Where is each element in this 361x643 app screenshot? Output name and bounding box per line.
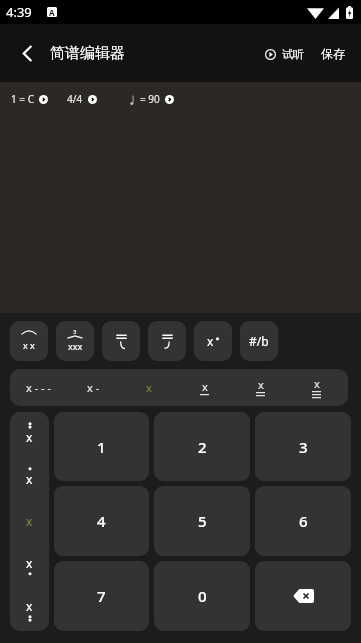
staticText: 保存	[321, 46, 345, 61]
button[interactable]: 4	[54, 486, 149, 556]
button[interactable]: Dotted note	[194, 321, 232, 361]
button[interactable]: note 2	[232, 369, 288, 406]
staticText: 0	[198, 586, 207, 606]
button[interactable]: 1	[54, 412, 149, 481]
staticText: 4/4	[67, 92, 83, 106]
staticText: 简谱编辑器	[50, 44, 125, 63]
button[interactable]: Backspace	[255, 561, 351, 631]
staticText: x	[26, 513, 33, 529]
staticText: x - - -	[26, 380, 52, 395]
staticText: 3	[73, 328, 77, 336]
button[interactable]: 保存	[318, 38, 348, 69]
staticText: x	[314, 376, 320, 391]
button[interactable]: 试听	[262, 39, 307, 69]
button[interactable]: 1 = C	[9, 88, 50, 110]
button[interactable]: Appoggiatura	[148, 321, 186, 361]
button[interactable]: note 1	[176, 369, 232, 406]
staticText: 2	[198, 437, 207, 457]
button[interactable]: octave 2	[10, 412, 49, 455]
staticText: x	[26, 429, 33, 445]
staticText: 试听	[282, 47, 304, 61]
staticText: 1	[97, 437, 106, 457]
staticText: x	[202, 379, 208, 394]
staticText: 7	[97, 586, 106, 606]
staticText: x	[26, 598, 33, 614]
staticText: 1 = C	[11, 92, 34, 106]
staticText: xxx	[68, 340, 83, 352]
button[interactable]: octave -2	[10, 587, 49, 631]
button[interactable]: 0	[154, 561, 250, 631]
button[interactable]: 6	[255, 486, 351, 556]
button[interactable]: 2	[154, 412, 250, 481]
staticText: 3	[299, 437, 308, 457]
button[interactable]: 5	[154, 486, 250, 556]
button[interactable]: octave 0	[10, 499, 49, 543]
button[interactable]: x -	[66, 369, 121, 406]
staticText: 5	[198, 511, 207, 531]
button[interactable]: 4/4	[65, 88, 99, 110]
staticText: x	[146, 380, 152, 395]
button[interactable]: Grace note	[102, 321, 140, 361]
button[interactable]: 7	[54, 561, 149, 631]
button[interactable]: x - - -	[11, 369, 66, 406]
staticText: A	[49, 7, 55, 17]
staticText: x	[207, 333, 214, 349]
button[interactable]: Accidental	[240, 321, 278, 361]
staticText: 6	[299, 511, 308, 531]
staticText: 4	[97, 511, 106, 531]
staticText: = 90	[140, 92, 160, 106]
staticText: x	[26, 555, 33, 571]
button[interactable]: octave -1	[10, 543, 49, 587]
button[interactable]: octave 1	[10, 455, 49, 499]
button[interactable]: x	[121, 369, 176, 406]
staticText: #/b	[249, 333, 269, 349]
button[interactable]: 3	[255, 412, 351, 481]
button[interactable]: = 90	[128, 88, 176, 110]
button[interactable]: Slur	[10, 321, 48, 361]
staticText: x x	[23, 339, 35, 351]
button[interactable]: Triplet	[56, 321, 94, 361]
staticText: 4:39	[6, 3, 32, 21]
button[interactable]: note 3	[288, 369, 344, 406]
staticText: x	[258, 377, 264, 392]
staticText: x	[26, 471, 33, 487]
button[interactable]: Back	[6, 32, 48, 74]
staticText: x -	[87, 380, 100, 395]
